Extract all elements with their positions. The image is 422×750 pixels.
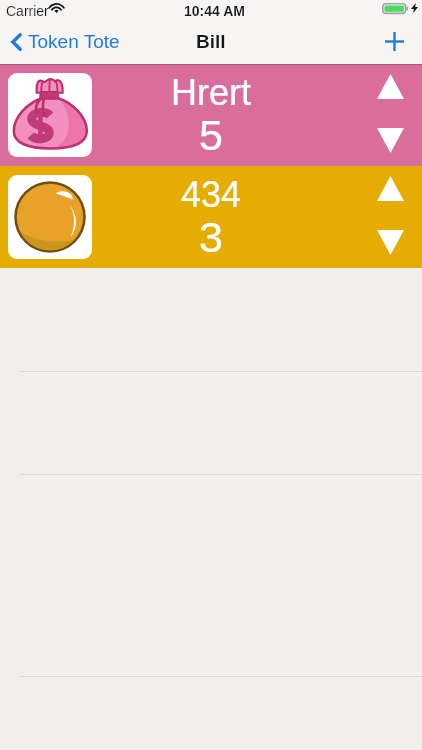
button[interactable]: Token Tote — [0, 25, 130, 58]
staticText: Bill — [196, 31, 226, 52]
button[interactable]: Add token — [376, 22, 413, 61]
button[interactable]: 434 — [0, 166, 422, 268]
staticText: Token Tote — [28, 31, 120, 52]
staticText: 5 — [0, 111, 422, 159]
button[interactable]: Decrease — [370, 124, 412, 158]
button[interactable]: Increase — [370, 71, 412, 101]
button[interactable]: Increase — [370, 173, 412, 203]
button[interactable]: Decrease — [370, 226, 412, 260]
button[interactable]: Hrert — [0, 64, 422, 166]
staticText: 3 — [0, 213, 422, 261]
staticText: Hrert — [0, 72, 422, 112]
staticText: 434 — [0, 174, 422, 214]
staticText: 10:44 AM — [184, 3, 245, 19]
staticText: Carrier — [6, 3, 49, 19]
